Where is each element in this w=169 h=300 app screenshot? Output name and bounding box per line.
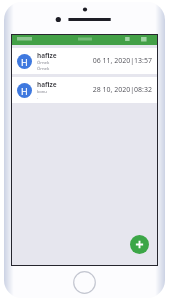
staticText: konu [37,89,47,95]
staticText: Örnek [37,66,50,72]
staticText: hafize [37,51,57,60]
staticText: 06 11, 2020|13:57 [92,56,152,66]
staticText: 28 10, 2020|08:32 [92,85,152,95]
button[interactable]: H [12,77,157,103]
staticText: . [37,95,39,101]
button[interactable]: Home [73,271,96,294]
staticText: hafize [37,80,57,89]
button[interactable]: Add note [130,235,149,254]
staticText: H [21,56,28,68]
staticText: H [21,85,28,97]
staticText: Örnek [37,60,50,66]
button[interactable]: H [12,48,157,74]
